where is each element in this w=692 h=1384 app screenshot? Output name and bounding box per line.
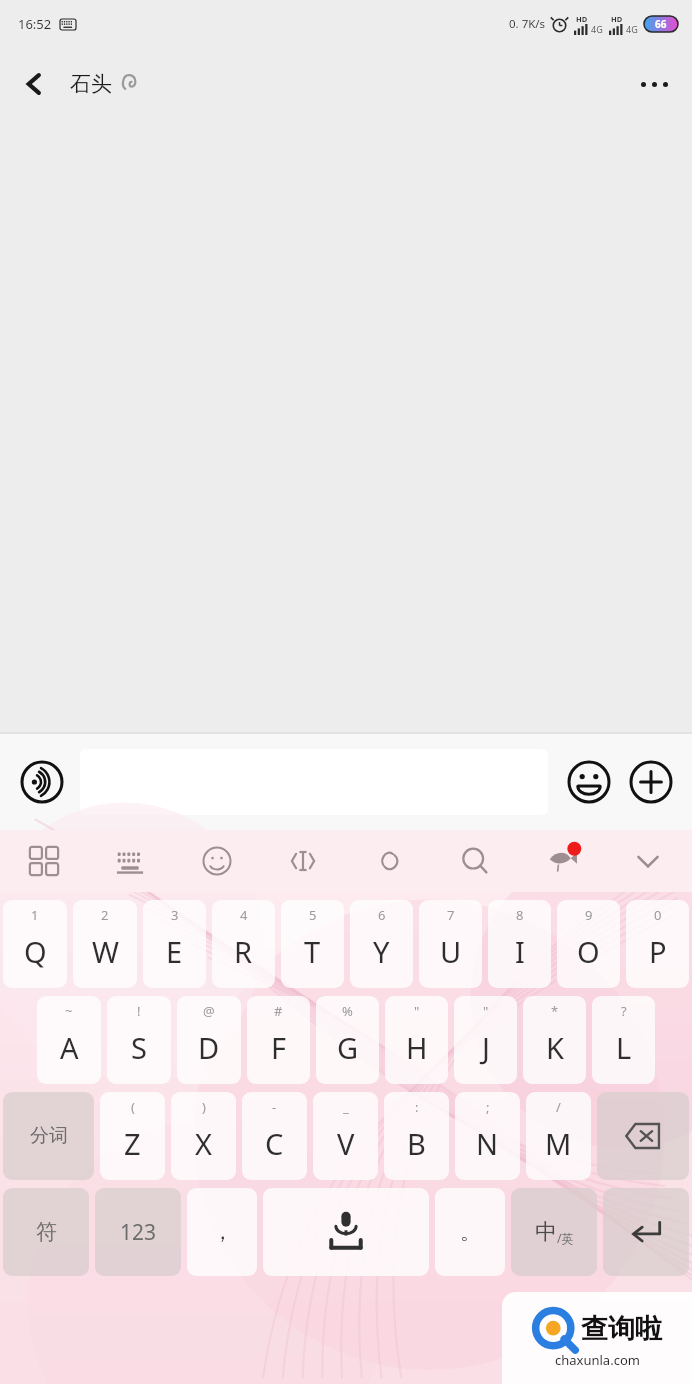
- button[interactable]: :: [384, 1092, 449, 1180]
- button[interactable]: ?: [592, 996, 655, 1084]
- staticText: 0. 7K/s: [509, 16, 546, 32]
- button[interactable]: 5: [281, 900, 344, 988]
- staticText: R: [234, 932, 253, 971]
- button[interactable]: Keyboard settings: [108, 839, 152, 883]
- button[interactable]: #: [247, 996, 310, 1084]
- button[interactable]: -: [242, 1092, 307, 1180]
- staticText: H: [406, 1028, 428, 1067]
- button[interactable]: _: [313, 1092, 378, 1180]
- staticText: S: [131, 1028, 147, 1067]
- button[interactable]: %: [316, 996, 379, 1084]
- button[interactable]: More functions: [624, 755, 678, 809]
- staticText: ": [483, 1002, 489, 1020]
- button[interactable]: 。: [435, 1188, 505, 1276]
- staticText: 6: [378, 906, 386, 924]
- button[interactable]: 0: [626, 900, 689, 988]
- button[interactable]: ;: [455, 1092, 520, 1180]
- button[interactable]: ~: [37, 996, 101, 1084]
- button[interactable]: 符: [3, 1188, 89, 1276]
- staticText: 4: [240, 906, 248, 924]
- staticText: %: [342, 1002, 353, 1020]
- staticText: -: [272, 1098, 277, 1116]
- staticText: @: [203, 1002, 215, 1020]
- button[interactable]: Hide keyboard: [626, 839, 670, 883]
- button[interactable]: !: [107, 996, 171, 1084]
- staticText: 0: [654, 906, 662, 924]
- staticText: ;: [486, 1098, 490, 1116]
- staticText: T: [304, 932, 321, 971]
- staticText: 。: [460, 1219, 481, 1245]
- staticText: U: [440, 932, 462, 971]
- button[interactable]: Emoji: [195, 839, 239, 883]
- staticText: ): [202, 1098, 206, 1116]
- button[interactable]: 3: [143, 900, 206, 988]
- staticText: Y: [373, 932, 390, 971]
- staticText: ~: [65, 1002, 73, 1020]
- button[interactable]: Search: [453, 839, 497, 883]
- staticText: /英: [557, 1230, 574, 1246]
- staticText: L: [616, 1028, 632, 1067]
- staticText: P: [649, 932, 667, 971]
- button[interactable]: Emoji: [562, 755, 616, 809]
- button[interactable]: 4: [212, 900, 275, 988]
- button[interactable]: Voice input: [14, 754, 70, 810]
- button[interactable]: @: [177, 996, 241, 1084]
- staticText: 分词: [30, 1124, 68, 1148]
- staticText: B: [407, 1124, 426, 1163]
- staticText: N: [476, 1124, 499, 1163]
- staticText: 9: [585, 906, 593, 924]
- button[interactable]: Backspace: [597, 1092, 689, 1180]
- staticText: HD: [576, 14, 588, 24]
- staticText: 2: [101, 906, 109, 924]
- button[interactable]: ，: [187, 1188, 257, 1276]
- staticText: ?: [621, 1002, 627, 1020]
- staticText: 符: [36, 1219, 57, 1245]
- button[interactable]: 1: [3, 900, 67, 988]
- button[interactable]: Space: [263, 1188, 429, 1276]
- button[interactable]: Enter: [603, 1188, 689, 1276]
- staticText: _: [343, 1098, 349, 1116]
- button[interactable]: ): [171, 1092, 236, 1180]
- staticText: D: [198, 1028, 220, 1067]
- button[interactable]: Back: [8, 58, 60, 110]
- button[interactable]: Edit text: [281, 839, 325, 883]
- button[interactable]: ": [385, 996, 448, 1084]
- staticText: ，: [212, 1219, 233, 1245]
- staticText: 16:52: [18, 15, 52, 33]
- staticText: I: [515, 932, 525, 971]
- staticText: E: [166, 932, 183, 971]
- staticText: 3: [171, 906, 179, 924]
- button[interactable]: 123: [95, 1188, 181, 1276]
- staticText: #: [274, 1002, 283, 1020]
- button[interactable]: 7: [419, 900, 482, 988]
- staticText: 5: [309, 906, 317, 924]
- button[interactable]: 分词: [3, 1092, 94, 1180]
- staticText: 4G: [591, 23, 603, 35]
- staticText: C: [265, 1124, 284, 1163]
- staticText: 8: [516, 906, 524, 924]
- staticText: 中: [535, 1218, 557, 1246]
- button[interactable]: 2: [73, 900, 137, 988]
- staticText: M: [545, 1124, 572, 1163]
- staticText: (: [131, 1098, 135, 1116]
- staticText: 123: [120, 1218, 157, 1247]
- button[interactable]: (: [100, 1092, 165, 1180]
- button[interactable]: /: [526, 1092, 591, 1180]
- staticText: 石头: [70, 71, 112, 97]
- staticText: Z: [124, 1124, 141, 1163]
- button[interactable]: Keyboard layouts: [22, 839, 66, 883]
- button[interactable]: Advertisement: [540, 839, 584, 883]
- button[interactable]: Clipboard: [367, 839, 411, 883]
- button[interactable]: 8: [488, 900, 551, 988]
- button[interactable]: 9: [557, 900, 620, 988]
- button[interactable]: 中: [511, 1188, 597, 1276]
- staticText: ": [414, 1002, 420, 1020]
- staticText: 4G: [626, 23, 638, 35]
- staticText: HD: [611, 14, 623, 24]
- button[interactable]: ": [454, 996, 517, 1084]
- button[interactable]: More options: [628, 58, 680, 110]
- button[interactable]: *: [523, 996, 586, 1084]
- button[interactable]: 6: [350, 900, 413, 988]
- staticText: W: [92, 932, 119, 971]
